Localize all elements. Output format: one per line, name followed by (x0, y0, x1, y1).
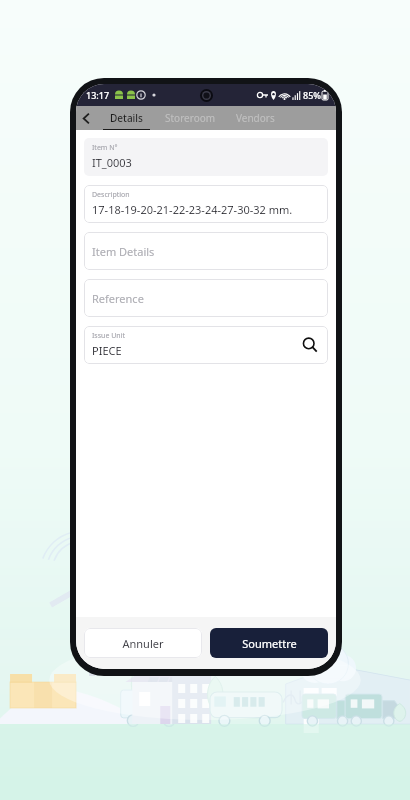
button[interactable]: Description (84, 185, 328, 223)
button[interactable]: Reference (84, 279, 328, 317)
staticText: Item N° (92, 143, 118, 153)
staticText: 85% (303, 89, 321, 101)
staticText: Issue Unit (92, 331, 125, 341)
button[interactable]: Details (98, 106, 155, 130)
staticText: IT_0003 (92, 155, 132, 170)
staticText: 17-18-19-20-21-22-23-24-27-30-32 mm. (92, 202, 293, 217)
button[interactable]: Search issue unit (299, 334, 321, 356)
staticText: Description (92, 190, 130, 200)
button[interactable]: Annuler (84, 628, 202, 658)
staticText: Soumettre (242, 636, 297, 651)
staticText: Reference (92, 291, 144, 306)
staticText: Annuler (122, 636, 164, 651)
staticText: Item Details (92, 244, 155, 259)
staticText: Details (110, 111, 143, 125)
button[interactable]: Vendors (226, 106, 285, 130)
button[interactable]: Item N° (84, 138, 328, 176)
staticText: PIECE (92, 343, 122, 358)
button[interactable]: Storeroom (155, 106, 226, 130)
staticText: 13:17 (86, 89, 110, 101)
staticText: Vendors (236, 111, 275, 125)
button[interactable]: Back (76, 108, 96, 128)
button[interactable]: Item Details (84, 232, 328, 270)
button[interactable]: Soumettre (210, 628, 328, 658)
staticText: Storeroom (165, 111, 216, 125)
button[interactable]: Issue Unit (84, 326, 328, 364)
